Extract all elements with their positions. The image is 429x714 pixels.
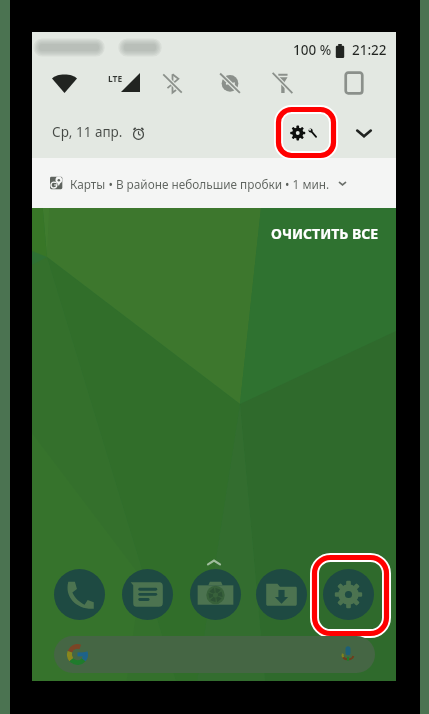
button[interactable]: Camera (183, 562, 247, 626)
staticText: Карты • В районе небольшие пробки • 1 ми… (70, 176, 330, 192)
other: Highlighted area (274, 105, 338, 160)
button[interactable]: Wi-Fi (44, 63, 84, 103)
button[interactable]: Bluetooth off (152, 63, 193, 103)
staticText: Ср, 11 апр. (52, 123, 123, 141)
staticText: LTE (108, 73, 123, 85)
button[interactable]: Maps traffic notification (32, 158, 396, 208)
button[interactable]: Phone (47, 562, 111, 626)
button[interactable]: Cast screen (335, 63, 373, 103)
staticText: 100 % (293, 41, 332, 59)
button[interactable]: Expand quick settings (348, 117, 380, 149)
button[interactable]: Messages (115, 562, 179, 626)
button[interactable]: Flashlight off (262, 63, 303, 103)
staticText: ОЧИСТИТЬ ВСЕ (271, 224, 379, 243)
button[interactable]: Search (54, 636, 375, 673)
button[interactable]: Settings (316, 562, 380, 626)
button[interactable]: Files (249, 562, 313, 626)
button[interactable]: Settings (285, 117, 323, 149)
button[interactable]: ОЧИСТИТЬ ВСЕ (265, 218, 384, 248)
other: Highlighted area (310, 553, 391, 638)
button[interactable]: Mobile network LTE (100, 63, 150, 103)
button[interactable]: Auto-rotate off (209, 63, 251, 103)
staticText: 21:22 (352, 41, 387, 59)
